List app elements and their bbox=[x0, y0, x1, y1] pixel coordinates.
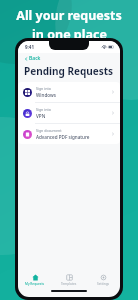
staticText: Sign document bbox=[36, 128, 62, 133]
button[interactable]: Settings bbox=[86, 270, 120, 290]
button[interactable]: Templates bbox=[52, 270, 86, 290]
staticText: Sign into bbox=[36, 86, 51, 91]
staticText: VPN bbox=[36, 113, 46, 119]
staticText: Templates bbox=[61, 282, 77, 286]
staticText: Windows bbox=[36, 92, 56, 98]
staticText: Settings bbox=[97, 282, 110, 286]
staticText: Pending Requests bbox=[24, 64, 114, 78]
button[interactable]: Sign into bbox=[18, 82, 120, 103]
button[interactable]: Back bbox=[18, 53, 49, 63]
staticText: Advanced PDF signature bbox=[36, 134, 90, 140]
staticText: in one place bbox=[32, 26, 107, 43]
button[interactable]: Sign document bbox=[18, 124, 120, 144]
staticText: 9:41 bbox=[25, 44, 34, 50]
button[interactable]: My Requests bbox=[18, 270, 52, 290]
button[interactable]: Sign into bbox=[18, 103, 120, 124]
staticText: Sign into bbox=[36, 107, 51, 112]
staticText: My Requests bbox=[25, 282, 45, 286]
staticText: Back bbox=[29, 55, 41, 62]
staticText: All your requests bbox=[16, 7, 122, 24]
